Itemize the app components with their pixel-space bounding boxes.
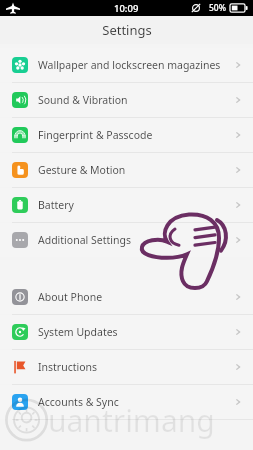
staticText: Settings	[102, 21, 152, 39]
button[interactable]: Battery	[0, 188, 253, 222]
button[interactable]: Instructions	[0, 350, 253, 384]
staticText: Gesture & Motion	[38, 163, 126, 177]
button[interactable]: Accounts & Sync	[0, 385, 253, 419]
staticText: Additional Settings	[38, 233, 131, 247]
button[interactable]: Wallpaper and lockscreen magazines	[0, 48, 253, 82]
staticText: Wallpaper and lockscreen magazines	[38, 58, 221, 72]
staticText: 50%	[209, 2, 226, 14]
button[interactable]: Additional Settings	[0, 223, 253, 257]
staticText: 10:09	[114, 2, 139, 15]
button[interactable]: Sound & Vibration	[0, 83, 253, 117]
button[interactable]: Gesture & Motion	[0, 153, 253, 187]
staticText: Fingerprint & Passcode	[38, 128, 153, 142]
button[interactable]: About Phone	[0, 280, 253, 314]
other: Pointing hand annotation	[137, 202, 237, 292]
staticText: About Phone	[38, 290, 103, 304]
staticText: Battery	[38, 198, 74, 212]
button[interactable]: Fingerprint & Passcode	[0, 118, 253, 152]
staticText: Sound & Vibration	[38, 93, 128, 107]
staticText: Accounts & Sync	[38, 395, 119, 409]
staticText: System Updates	[38, 325, 118, 339]
staticText: uantrimang	[48, 400, 215, 441]
staticText: Instructions	[38, 360, 98, 374]
button[interactable]: System Updates	[0, 315, 253, 349]
